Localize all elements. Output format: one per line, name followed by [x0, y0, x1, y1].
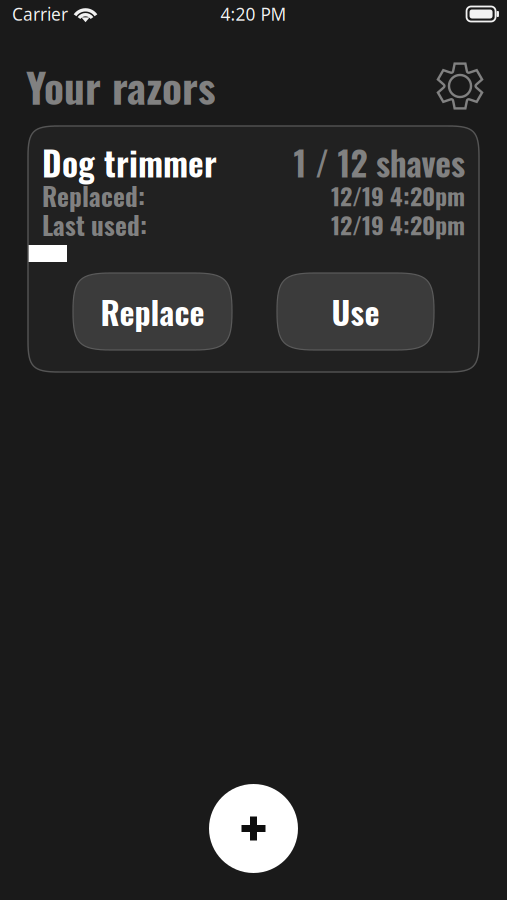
staticText: Last used:	[42, 206, 147, 243]
staticText: 1 / 12 shaves	[293, 138, 465, 187]
staticText: Replaced:	[42, 177, 145, 214]
staticText: 12/19 4:20pm	[331, 178, 465, 213]
button[interactable]: Add razor	[209, 784, 298, 873]
staticText: Your razors	[26, 55, 216, 117]
staticText: Replace	[100, 288, 204, 335]
button[interactable]: Settings	[430, 56, 490, 116]
staticText: Dog trimmer	[42, 138, 217, 187]
staticText: 12/19 4:20pm	[331, 207, 465, 242]
staticText: Carrier	[12, 2, 68, 25]
button[interactable]: Use	[277, 273, 434, 350]
button[interactable]: Replace	[73, 273, 232, 350]
staticText: Use	[331, 288, 379, 335]
staticText: 4:20 PM	[220, 2, 286, 25]
